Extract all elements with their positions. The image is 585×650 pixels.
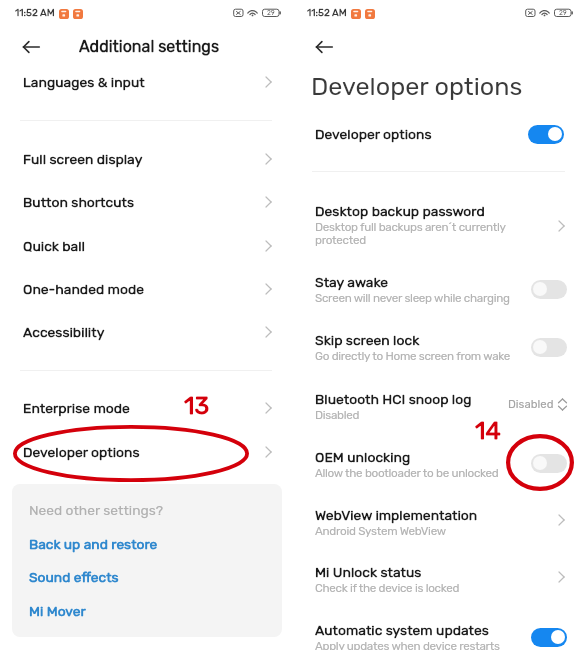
- button[interactable]: Back up and restore: [12, 527, 282, 557]
- staticText: Disabled: [315, 408, 360, 422]
- staticText: Back up and restore: [29, 536, 158, 552]
- button[interactable]: Accessibility: [0, 311, 292, 353]
- staticText: Mi Unlock status: [315, 564, 422, 580]
- button[interactable]: Button shortcuts: [0, 181, 292, 223]
- button[interactable]: Quick ball: [0, 225, 292, 267]
- staticText: 29: [267, 9, 275, 17]
- staticText: Desktop full backups aren´t currently: [315, 220, 506, 234]
- staticText: Disabled: [508, 397, 554, 411]
- staticText: Button shortcuts: [23, 194, 135, 210]
- staticText: Stay awake: [315, 274, 389, 290]
- button[interactable]: One-handed mode: [0, 268, 292, 310]
- staticText: Additional settings: [79, 37, 220, 56]
- staticText: 13: [184, 391, 210, 420]
- button[interactable]: WebView implementation: [292, 494, 585, 534]
- button[interactable]: Back: [15, 34, 49, 60]
- button[interactable]: Mi Mover: [12, 594, 282, 624]
- staticText: One-handed mode: [23, 281, 144, 297]
- staticText: Sound effects: [29, 569, 119, 585]
- button[interactable]: Bluetooth HCI snoop log: [292, 378, 585, 418]
- staticText: Accessibility: [23, 324, 105, 340]
- staticText: Developer options: [23, 444, 140, 460]
- button[interactable]: Switch off: [531, 280, 567, 299]
- staticText: Quick ball: [23, 238, 85, 254]
- staticText: Bluetooth HCI snoop log: [315, 391, 472, 407]
- staticText: Allow the bootloader to be unlocked: [315, 466, 499, 480]
- button[interactable]: Languages & input: [0, 61, 292, 103]
- button[interactable]: Switch on: [528, 125, 564, 144]
- staticText: Mi Mover: [29, 603, 86, 619]
- staticText: Android System WebView: [315, 524, 446, 538]
- button[interactable]: Skip screen lock: [292, 319, 585, 359]
- staticText: Check if the device is locked: [315, 581, 460, 595]
- button[interactable]: Full screen display: [0, 138, 292, 180]
- staticText: WebView implementation: [315, 507, 478, 523]
- button[interactable]: Developer options: [0, 431, 292, 473]
- staticText: Full screen display: [23, 151, 143, 167]
- button[interactable]: Stay awake: [292, 261, 585, 301]
- staticText: Desktop backup password: [315, 203, 485, 219]
- staticText: 11:52 AM: [307, 7, 347, 19]
- staticText: 29: [559, 9, 567, 17]
- staticText: protected: [315, 233, 366, 247]
- staticText: Go directly to Home screen from wake: [315, 349, 510, 363]
- button[interactable]: Back: [308, 34, 342, 60]
- staticText: Developer options: [311, 71, 523, 101]
- staticText: Apply updates when device restarts: [315, 639, 500, 650]
- staticText: 14: [475, 416, 501, 445]
- button[interactable]: Desktop backup password: [292, 190, 585, 230]
- staticText: Developer options: [315, 126, 432, 142]
- staticText: Screen will never sleep while charging: [315, 291, 510, 305]
- staticText: Enterprise mode: [23, 400, 130, 416]
- staticText: Skip screen lock: [315, 332, 420, 348]
- staticText: Automatic system updates: [315, 622, 489, 638]
- staticText: Languages & input: [23, 74, 145, 90]
- button[interactable]: Automatic system updates: [292, 609, 585, 649]
- button[interactable]: OEM unlocking: [292, 436, 585, 476]
- staticText: Need other settings?: [29, 502, 164, 518]
- button[interactable]: Switch on: [531, 628, 567, 647]
- staticText: OEM unlocking: [315, 449, 411, 465]
- button[interactable]: Developer options: [292, 113, 585, 153]
- button[interactable]: Enterprise mode: [0, 387, 292, 429]
- staticText: 11:52 AM: [15, 7, 55, 19]
- button[interactable]: Switch off: [531, 338, 567, 357]
- button[interactable]: Switch off: [531, 454, 567, 473]
- button[interactable]: Mi Unlock status: [292, 551, 585, 591]
- button[interactable]: Sound effects: [12, 560, 282, 590]
